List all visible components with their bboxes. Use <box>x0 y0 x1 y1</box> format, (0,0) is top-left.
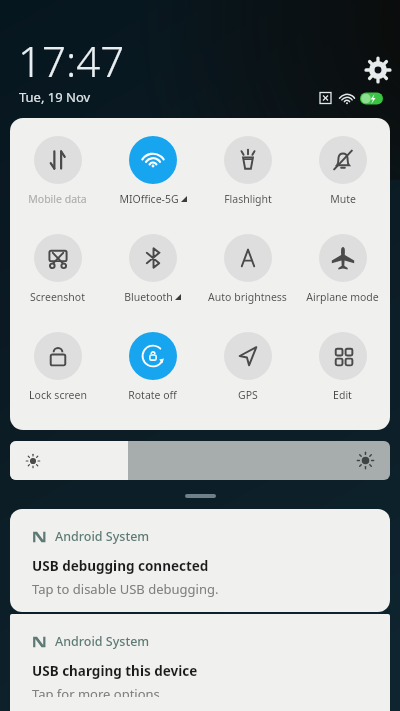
button[interactable] <box>10 441 390 480</box>
staticText: USB charging this device <box>32 662 198 680</box>
staticText: Auto brightness <box>208 290 287 304</box>
button[interactable]: Airplane mode <box>295 234 390 332</box>
staticText: Tap for more options. <box>32 685 164 697</box>
button[interactable]: Edit <box>295 332 390 430</box>
staticText: Bluetooth <box>124 290 173 304</box>
button[interactable]: Mute <box>295 136 390 234</box>
button[interactable]: Screenshot <box>10 234 105 332</box>
staticText: Lock screen <box>29 388 87 402</box>
button[interactable]: MIOffice-5G <box>105 136 200 234</box>
staticText: USB debugging connected <box>32 557 209 575</box>
staticText: Rotate off <box>128 388 177 402</box>
staticText: Flashlight <box>224 192 272 206</box>
staticText: Tue, 19 Nov <box>19 88 91 106</box>
button[interactable]: Android System <box>10 614 390 711</box>
button[interactable]: GPS <box>200 332 295 430</box>
button[interactable]: Android System <box>10 509 390 612</box>
staticText: Mute <box>330 192 356 206</box>
staticText: Android System <box>55 633 150 650</box>
staticText: GPS <box>238 388 258 402</box>
button[interactable]: Settings <box>362 54 394 86</box>
staticText: Airplane mode <box>306 290 379 304</box>
staticText: MIOffice-5G <box>119 192 179 206</box>
staticText: Tap to disable USB debugging. <box>32 580 219 598</box>
staticText: Edit <box>333 388 352 402</box>
staticText: Screenshot <box>30 290 85 304</box>
button[interactable]: Lock screen <box>10 332 105 430</box>
staticText: 17:47 <box>18 32 125 89</box>
button[interactable]: Flashlight <box>200 136 295 234</box>
staticText: Android System <box>55 528 150 545</box>
staticText: Mobile data <box>28 192 87 206</box>
button[interactable]: Mobile data <box>10 136 105 234</box>
button[interactable]: Bluetooth <box>105 234 200 332</box>
button[interactable]: Rotate off <box>105 332 200 430</box>
button[interactable]: Auto brightness <box>200 234 295 332</box>
